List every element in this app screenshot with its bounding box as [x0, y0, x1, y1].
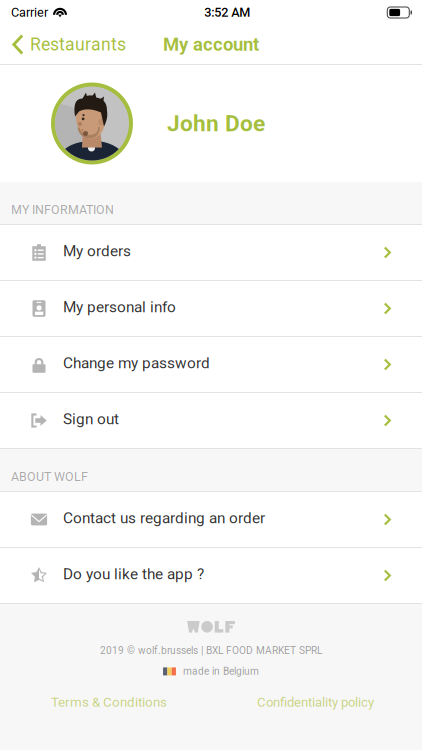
button[interactable]: Contact us regarding an order: [0, 492, 422, 548]
staticText: Confidentiality policy: [257, 694, 374, 710]
staticText: Terms & Conditions: [51, 694, 167, 710]
button[interactable]: Sign out: [0, 393, 422, 449]
button[interactable]: Do you like the app ?: [0, 548, 422, 604]
staticText: 3:52 AM: [204, 5, 250, 20]
staticText: made in Belgium: [183, 665, 259, 677]
staticText: ABOUT WOLF: [11, 469, 88, 484]
staticText: Change my password: [63, 354, 210, 372]
button[interactable]: Confidentiality policy: [257, 688, 374, 716]
staticText: 2019 © wolf.brussels | BXL FOOD MARKET S…: [100, 645, 322, 656]
staticText: Contact us regarding an order: [63, 509, 265, 527]
button[interactable]: Restaurants: [0, 25, 134, 64]
staticText: John Doe: [167, 110, 265, 137]
staticText: My personal info: [63, 298, 176, 316]
button[interactable]: My personal info: [0, 281, 422, 337]
staticText: Carrier: [11, 5, 48, 20]
button[interactable]: Change my password: [0, 337, 422, 393]
button[interactable]: Terms & Conditions: [51, 688, 167, 716]
staticText: Sign out: [63, 410, 119, 428]
staticText: My orders: [63, 242, 131, 260]
staticText: Do you like the app ?: [63, 565, 204, 583]
staticText: MY INFORMATION: [11, 202, 114, 217]
button[interactable]: My orders: [0, 225, 422, 281]
staticText: Restaurants: [30, 34, 126, 55]
staticText: My account: [163, 34, 259, 55]
